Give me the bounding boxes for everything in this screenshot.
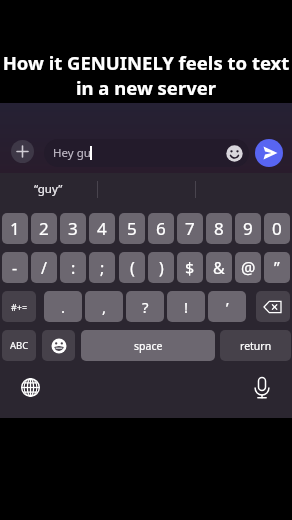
- button[interactable]: [255, 139, 283, 167]
- button[interactable]: [16, 373, 45, 402]
- button[interactable]: #+=: [2, 291, 36, 322]
- button[interactable]: “guy”: [0, 173, 97, 205]
- button[interactable]: Hey gu: [44, 139, 249, 167]
- button[interactable]: ”: [264, 252, 290, 283]
- staticText: (: [130, 257, 135, 279]
- staticText: 5: [127, 217, 137, 240]
- staticText: 2: [39, 217, 49, 240]
- button[interactable]: 7: [177, 213, 203, 244]
- button[interactable]: /: [31, 252, 57, 283]
- button[interactable]: @: [235, 252, 261, 283]
- button[interactable]: [11, 140, 34, 163]
- button[interactable]: 0: [264, 213, 290, 244]
- staticText: 7: [185, 217, 195, 240]
- button[interactable]: ’: [208, 291, 246, 322]
- button[interactable]: ABC: [2, 330, 36, 361]
- button[interactable]: -: [2, 252, 28, 283]
- staticText: ”: [274, 257, 280, 279]
- staticText: ): [159, 257, 164, 279]
- button[interactable]: ,: [85, 291, 123, 322]
- button[interactable]: ;: [89, 252, 115, 283]
- staticText: .: [61, 297, 66, 317]
- staticText: 4: [97, 217, 107, 240]
- button[interactable]: space: [81, 330, 215, 361]
- staticText: /: [41, 257, 47, 279]
- button[interactable]: 2: [31, 213, 57, 244]
- button[interactable]: return: [220, 330, 291, 361]
- button[interactable]: 1: [2, 213, 28, 244]
- staticText: !: [184, 297, 189, 317]
- button[interactable]: [42, 330, 75, 361]
- button[interactable]: &: [206, 252, 232, 283]
- button[interactable]: ?: [126, 291, 164, 322]
- staticText: return: [240, 339, 272, 353]
- staticText: ’: [226, 297, 229, 317]
- staticText: Hey gu: [53, 145, 91, 161]
- staticText: @: [241, 257, 256, 279]
- button[interactable]: $: [177, 252, 203, 283]
- staticText: -: [12, 257, 18, 279]
- staticText: “guy”: [34, 181, 63, 197]
- staticText: $: [185, 257, 195, 279]
- button[interactable]: ): [148, 252, 174, 283]
- staticText: ABC: [10, 339, 29, 352]
- staticText: 1: [10, 217, 20, 240]
- staticText: #+=: [11, 301, 28, 313]
- staticText: 9: [243, 217, 253, 240]
- button[interactable]: (: [119, 252, 145, 283]
- button[interactable]: !: [167, 291, 205, 322]
- staticText: ;: [100, 257, 105, 279]
- button[interactable]: [247, 373, 276, 402]
- staticText: 8: [214, 217, 224, 240]
- button[interactable]: .: [44, 291, 82, 322]
- staticText: How it GENUINELY feels to text in a new …: [0, 50, 292, 100]
- staticText: 0: [272, 217, 282, 240]
- button[interactable]: 6: [148, 213, 174, 244]
- button[interactable]: [256, 291, 290, 322]
- staticText: 6: [156, 217, 166, 240]
- staticText: ?: [142, 297, 149, 317]
- staticText: ,: [102, 297, 107, 317]
- staticText: 3: [68, 217, 78, 240]
- button[interactable]: 9: [235, 213, 261, 244]
- button[interactable]: 4: [89, 213, 115, 244]
- button[interactable]: 8: [206, 213, 232, 244]
- button[interactable]: :: [60, 252, 86, 283]
- button[interactable]: 5: [119, 213, 145, 244]
- staticText: space: [134, 339, 163, 353]
- staticText: &: [213, 257, 225, 279]
- button[interactable]: 3: [60, 213, 86, 244]
- staticText: :: [71, 257, 76, 279]
